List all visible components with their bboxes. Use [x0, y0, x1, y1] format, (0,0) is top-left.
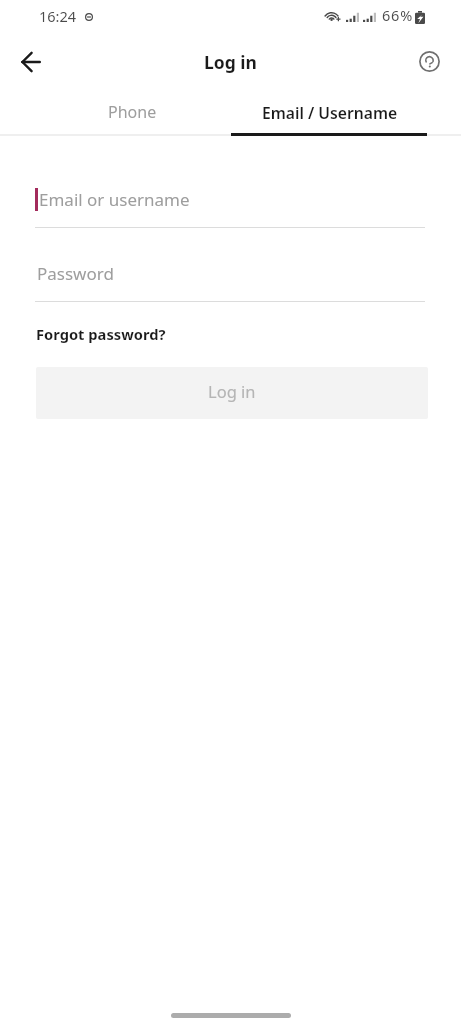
staticText: 16:24: [39, 6, 77, 26]
staticText: 66%: [382, 5, 414, 25]
staticText: Email or username: [39, 188, 190, 211]
button[interactable]: Email or username: [35, 176, 425, 211]
staticText: Log in: [208, 380, 256, 402]
button[interactable]: Help: [408, 40, 450, 82]
button[interactable]: Password: [35, 250, 425, 285]
staticText: Email / Username: [262, 102, 398, 123]
staticText: Log in: [204, 50, 257, 74]
staticText: Forgot password?: [36, 324, 166, 344]
staticText: Phone: [108, 101, 157, 123]
button[interactable]: Phone: [35, 90, 230, 134]
button[interactable]: Back: [9, 40, 53, 84]
button[interactable]: Email / Username: [230, 90, 426, 134]
button[interactable]: Forgot password?: [35, 320, 167, 348]
staticText: Password: [37, 262, 114, 285]
button[interactable]: Log in: [36, 367, 428, 419]
